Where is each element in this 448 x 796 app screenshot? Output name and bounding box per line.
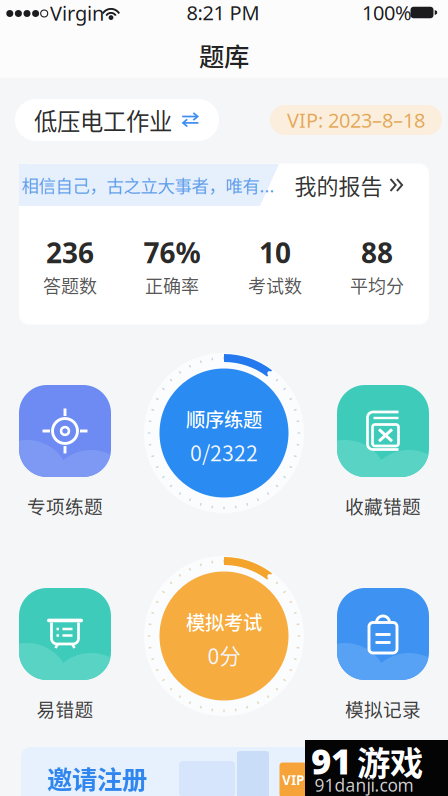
staticText: Virgin [50, 0, 104, 26]
staticText: 邀请注册 [47, 760, 147, 796]
staticText: 91 [311, 738, 351, 784]
button[interactable]: 顺序练题 [144, 353, 304, 513]
staticText: 考试数 [248, 272, 302, 298]
staticText: 题库 [199, 37, 249, 73]
button[interactable]: 易错题 [19, 588, 111, 722]
button[interactable]: 我的报告 [280, 164, 419, 206]
staticText: 平均分 [350, 272, 404, 298]
staticText: 相信自己，古之立大事者，唯有... [21, 172, 274, 198]
staticText: 我的报告 [294, 169, 382, 201]
staticText: 正确率 [145, 272, 199, 298]
button[interactable]: 低压电工作业 [15, 99, 219, 141]
staticText: 顺序练题 [186, 405, 262, 433]
button[interactable]: VIP: 2023–8–18 [270, 105, 442, 135]
staticText: 易错题 [36, 695, 93, 722]
staticText: 0/2322 [190, 437, 258, 467]
staticText: 专项练题 [27, 492, 103, 519]
button[interactable]: 模拟记录 [337, 588, 429, 722]
staticText: VIP: 2023–8–18 [287, 107, 425, 133]
staticText: VIP [282, 771, 304, 789]
staticText: 0分 [207, 640, 240, 670]
staticText: 100% [362, 0, 412, 26]
button[interactable]: 专项练题 [19, 385, 111, 519]
staticText: 游戏 [357, 737, 423, 785]
staticText: 236 [46, 234, 94, 271]
staticText: 8:21 PM [186, 0, 259, 26]
staticText: 76% [143, 234, 200, 271]
staticText: 91danji.com [314, 773, 413, 796]
staticText: 答题数 [43, 272, 97, 298]
button[interactable]: 模拟考试 [144, 556, 304, 716]
staticText: 88 [361, 234, 393, 271]
staticText: 模拟记录 [345, 695, 421, 722]
staticText: 收藏错题 [345, 492, 421, 519]
staticText: 10 [259, 234, 291, 271]
staticText: 低压电工作业 [34, 103, 172, 137]
button[interactable]: 收藏错题 [337, 385, 429, 519]
staticText: 模拟考试 [186, 608, 262, 636]
button[interactable]: 邀请注册 [21, 747, 427, 796]
